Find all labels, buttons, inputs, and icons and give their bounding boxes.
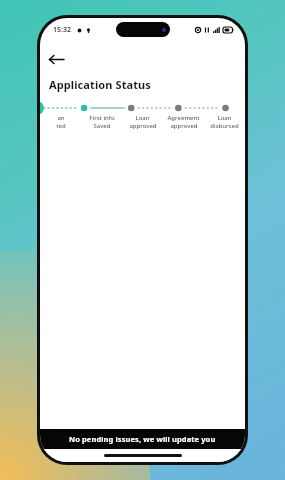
staticText: 15:32 — [53, 25, 71, 35]
staticText: ted — [56, 122, 66, 130]
staticText: Loan — [135, 114, 150, 122]
staticText: Loan — [217, 114, 232, 122]
staticText: Application Status — [49, 77, 151, 92]
button[interactable]: Back — [45, 48, 67, 70]
staticText: First info — [89, 114, 115, 122]
button[interactable]: No pending issues, we will update you — [40, 429, 245, 449]
button[interactable]: First info — [81, 114, 122, 130]
staticText: Saved — [93, 122, 111, 130]
staticText: disbursed — [210, 122, 239, 130]
staticText: No pending issues, we will update you — [69, 434, 216, 444]
staticText: Agreement — [167, 114, 200, 122]
button[interactable]: an — [40, 114, 81, 130]
staticText: approved — [129, 122, 157, 130]
button[interactable]: Loan — [122, 114, 163, 130]
staticText: an — [57, 114, 65, 122]
button[interactable]: Agreement — [163, 114, 204, 130]
staticText: approved — [170, 122, 198, 130]
button[interactable]: Loan — [204, 114, 245, 130]
